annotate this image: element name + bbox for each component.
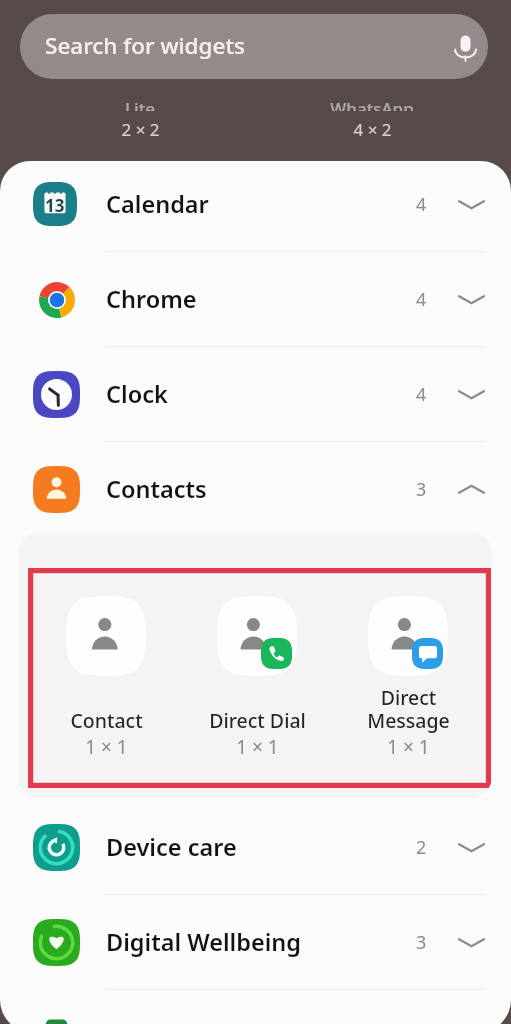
staticText: Direct Dial bbox=[209, 707, 306, 734]
button[interactable]: Digital Wellbeing bbox=[0, 895, 511, 989]
button[interactable]: Voice search bbox=[448, 30, 482, 64]
staticText: Search for widgets bbox=[45, 30, 245, 61]
button[interactable]: Clock bbox=[0, 347, 511, 441]
button[interactable]: 13 bbox=[0, 161, 511, 251]
staticText: 3 bbox=[416, 477, 427, 502]
button[interactable]: Device care bbox=[0, 800, 511, 894]
staticText: Calendar bbox=[106, 188, 416, 220]
button[interactable]: WhatsApp bbox=[302, 97, 442, 120]
staticText: Contacts bbox=[106, 473, 416, 505]
staticText: 4 bbox=[416, 192, 427, 217]
staticText: 1 × 1 bbox=[387, 734, 430, 760]
staticText: 2 × 2 bbox=[121, 118, 160, 141]
button[interactable]: Contacts bbox=[0, 442, 511, 536]
button[interactable]: Lite bbox=[70, 97, 210, 120]
button[interactable]: Contact bbox=[39, 595, 173, 757]
staticText: Digital Wellbeing bbox=[106, 926, 416, 958]
staticText: 3 bbox=[416, 930, 427, 955]
staticText: Lite bbox=[125, 97, 155, 111]
staticText: 4 bbox=[416, 382, 427, 407]
button[interactable]: Direct Dial bbox=[190, 595, 324, 757]
staticText: Device care bbox=[106, 831, 416, 863]
staticText: Direct Message bbox=[367, 684, 450, 734]
staticText: Clock bbox=[106, 378, 416, 410]
staticText: 4 bbox=[416, 287, 427, 312]
button[interactable]: Direct Message bbox=[341, 595, 475, 757]
button[interactable] bbox=[33, 1013, 80, 1024]
button[interactable]: Search for widgets bbox=[20, 14, 488, 79]
staticText: 13 bbox=[45, 194, 65, 217]
staticText: 1 × 1 bbox=[85, 734, 128, 760]
staticText: 2 bbox=[416, 835, 427, 860]
staticText: Chrome bbox=[106, 283, 416, 315]
staticText: 4 × 2 bbox=[353, 118, 392, 141]
button[interactable]: Chrome bbox=[0, 252, 511, 346]
staticText: WhatsApp bbox=[330, 97, 414, 111]
staticText: 1 × 1 bbox=[236, 734, 279, 760]
staticText: Contact bbox=[70, 707, 143, 734]
